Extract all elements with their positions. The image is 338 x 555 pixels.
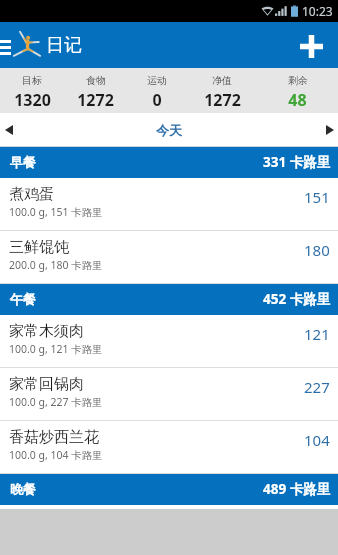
staticText: 48 xyxy=(288,89,307,111)
staticText: 104 xyxy=(304,430,330,450)
staticText: 晚餐 xyxy=(10,481,36,497)
button[interactable]: 三鲜馄饨 xyxy=(0,231,338,284)
staticText: 食物 xyxy=(86,74,106,87)
button[interactable]: 晚餐 xyxy=(0,474,338,505)
staticText: 净值 xyxy=(212,74,232,87)
button[interactable]: Next day xyxy=(322,113,338,147)
button[interactable]: Menu xyxy=(0,22,18,68)
staticText: 今天 xyxy=(156,122,182,138)
staticText: 180 xyxy=(304,240,330,260)
staticText: 家常木须肉 xyxy=(9,322,84,341)
staticText: 香菇炒西兰花 xyxy=(9,428,99,447)
button[interactable]: 家常木须肉 xyxy=(0,315,338,368)
button[interactable]: 家常回锅肉 xyxy=(0,368,338,421)
staticText: 家常回锅肉 xyxy=(9,375,84,394)
button[interactable]: 午餐 xyxy=(0,284,338,315)
staticText: 227 xyxy=(304,377,330,397)
staticText: 489 卡路里 xyxy=(263,480,331,498)
staticText: 1272 xyxy=(204,89,241,111)
button[interactable]: 煮鸡蛋 xyxy=(0,178,338,231)
staticText: 目标 xyxy=(22,74,42,87)
staticText: 10:23 xyxy=(302,3,333,19)
button[interactable]: 早餐 xyxy=(0,147,338,178)
button[interactable]: 香菇炒西兰花 xyxy=(0,421,338,474)
staticText: 331 卡路里 xyxy=(263,153,331,171)
staticText: 早餐 xyxy=(10,154,36,170)
staticText: 100.0 g, 104 卡路里 xyxy=(9,448,103,462)
button[interactable]: Previous day xyxy=(0,113,17,147)
staticText: 121 xyxy=(304,324,330,344)
staticText: 剩余 xyxy=(288,74,308,87)
staticText: 100.0 g, 227 卡路里 xyxy=(9,395,103,409)
staticText: 三鲜馄饨 xyxy=(9,238,69,257)
staticText: 1272 xyxy=(77,89,114,111)
staticText: 452 卡路里 xyxy=(263,290,331,308)
staticText: 0 xyxy=(152,89,162,111)
staticText: 煮鸡蛋 xyxy=(9,185,54,204)
staticText: 200.0 g, 180 卡路里 xyxy=(9,258,103,272)
staticText: 运动 xyxy=(147,74,167,87)
staticText: 日记 xyxy=(46,34,82,57)
button[interactable]: 今天 xyxy=(156,122,182,138)
staticText: 1320 xyxy=(14,89,51,111)
staticText: 100.0 g, 151 卡路里 xyxy=(9,205,103,219)
staticText: 151 xyxy=(304,187,330,207)
staticText: 午餐 xyxy=(10,291,36,307)
staticText: 100.0 g, 121 卡路里 xyxy=(9,342,103,356)
button[interactable]: Add xyxy=(290,22,338,68)
